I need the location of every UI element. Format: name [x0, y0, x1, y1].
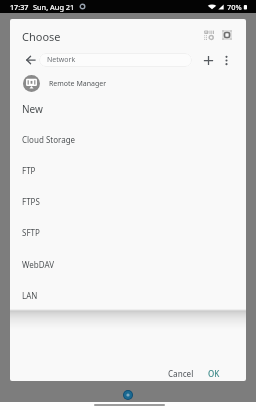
button[interactable]: Cloud Storage	[10, 124, 246, 155]
button[interactable]: New	[10, 93, 246, 124]
button[interactable]: Scan code	[217, 25, 237, 45]
button[interactable]: Assistant	[123, 390, 133, 400]
button[interactable]: Back	[21, 50, 40, 69]
staticText: New	[22, 102, 43, 116]
button[interactable]: WebDAV	[10, 249, 246, 280]
button[interactable]: OK	[202, 364, 226, 381]
staticText: FTP	[22, 165, 36, 176]
staticText: 70%	[227, 2, 242, 12]
button[interactable]: Network	[39, 53, 192, 67]
staticText: Choose	[22, 29, 61, 44]
staticText: LAN	[22, 290, 38, 301]
staticText: 17:37	[10, 2, 29, 12]
staticText: Cancel	[168, 368, 194, 379]
button: Choose	[10, 19, 246, 52]
staticText: SFTP	[22, 227, 40, 238]
button[interactable]: FTP	[10, 155, 246, 186]
button[interactable]: LAN	[10, 280, 246, 311]
staticText: FTPS	[22, 196, 40, 207]
button[interactable]: Select layout	[199, 25, 219, 45]
staticText: Cloud Storage	[22, 134, 76, 145]
staticText: Network	[47, 55, 76, 65]
button[interactable]: Cancel	[162, 364, 200, 381]
button[interactable]: More options	[216, 50, 236, 70]
staticText: OK	[208, 368, 220, 379]
staticText: Sun, Aug 21	[33, 2, 75, 12]
button[interactable]: FTPS	[10, 186, 246, 217]
staticText: Remote Manager	[49, 79, 107, 89]
button[interactable]: SFTP	[10, 217, 246, 248]
staticText: WebDAV	[22, 259, 54, 270]
button[interactable]: Add	[198, 50, 218, 70]
button[interactable]: Remote Manager	[10, 72, 246, 95]
